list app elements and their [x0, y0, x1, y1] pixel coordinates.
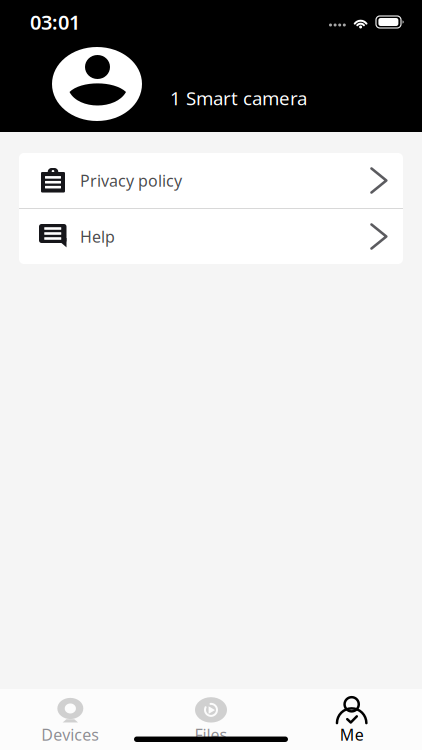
staticText: Devices	[41, 724, 99, 745]
button[interactable]: Help	[19, 209, 403, 264]
staticText: 1 Smart camera	[170, 86, 307, 110]
button[interactable]: Me	[281, 688, 422, 741]
button[interactable]: Privacy policy	[19, 153, 403, 208]
button[interactable]: Files	[141, 688, 281, 741]
staticText: Me	[340, 724, 364, 745]
staticText: Files	[194, 724, 227, 745]
staticText: 03:01	[30, 9, 80, 35]
staticText: Privacy policy	[80, 170, 182, 191]
staticText: Help	[80, 226, 115, 247]
button[interactable]: Devices	[0, 688, 141, 741]
